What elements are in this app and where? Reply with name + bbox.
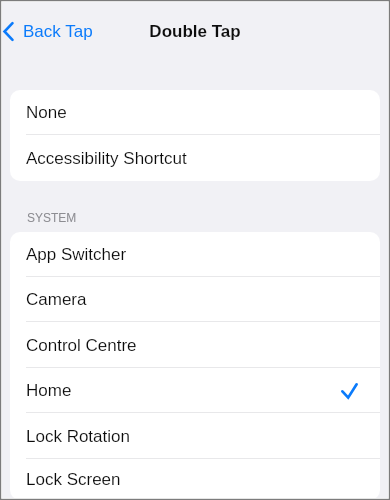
- button[interactable]: Home: [10, 368, 380, 413]
- staticText: Lock Screen: [26, 470, 121, 489]
- button[interactable]: Lock Screen: [10, 459, 380, 500]
- staticText: Accessibility Shortcut: [26, 149, 187, 168]
- button[interactable]: Back to Back Tap: [2, 19, 93, 44]
- button[interactable]: Control Centre: [10, 322, 380, 368]
- staticText: Home: [26, 381, 72, 400]
- button[interactable]: None: [10, 90, 380, 135]
- staticText: Control Centre: [26, 336, 137, 355]
- staticText: Lock Rotation: [26, 427, 130, 446]
- staticText: Camera: [26, 290, 87, 309]
- staticText: SYSTEM: [27, 211, 77, 224]
- button[interactable]: Camera: [10, 277, 380, 322]
- button[interactable]: App Switcher: [10, 232, 380, 277]
- button[interactable]: Accessibility Shortcut: [10, 135, 380, 181]
- staticText: Back Tap: [23, 22, 93, 41]
- staticText: App Switcher: [26, 245, 127, 264]
- staticText: Double Tap: [149, 22, 241, 41]
- staticText: None: [26, 103, 67, 122]
- button[interactable]: Lock Rotation: [10, 413, 380, 459]
